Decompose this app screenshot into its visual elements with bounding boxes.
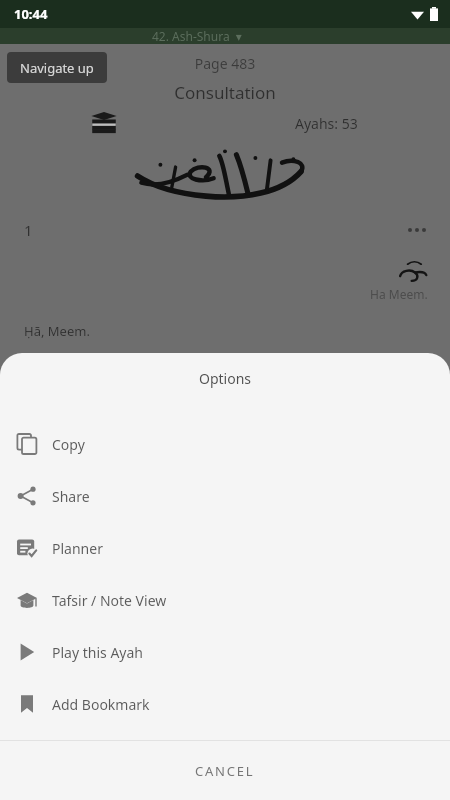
button[interactable]: Tafsir / Note View <box>0 574 450 626</box>
button[interactable]: Share <box>0 470 450 522</box>
staticText: CANCEL <box>195 762 255 780</box>
staticText: Share <box>52 487 90 506</box>
button[interactable]: Copy <box>0 418 450 470</box>
staticText: Planner <box>52 539 103 558</box>
staticText: Consultation <box>0 81 450 104</box>
staticText: Ayahs: 53 <box>295 114 358 133</box>
staticText: Ḥā, Meem. <box>24 322 90 340</box>
staticText: Page 483 <box>0 54 450 73</box>
button[interactable]: Play this Ayah <box>0 626 450 678</box>
button[interactable]: CANCEL <box>0 741 450 800</box>
staticText: Navigate up <box>20 59 94 77</box>
staticText: Options <box>0 369 450 388</box>
button[interactable]: Add Bookmark <box>0 678 450 730</box>
staticText: Ha Meem. <box>370 286 428 302</box>
button[interactable]: Planner <box>0 522 450 574</box>
staticText: 10:44 <box>14 5 48 23</box>
staticText: 42. Ash-Shura ▾ <box>152 28 242 44</box>
staticText: Tafsir / Note View <box>52 591 167 610</box>
staticText: Play this Ayah <box>52 643 143 662</box>
staticText: 1 <box>24 220 33 240</box>
staticText: Copy <box>52 435 85 454</box>
staticText: Add Bookmark <box>52 695 150 714</box>
